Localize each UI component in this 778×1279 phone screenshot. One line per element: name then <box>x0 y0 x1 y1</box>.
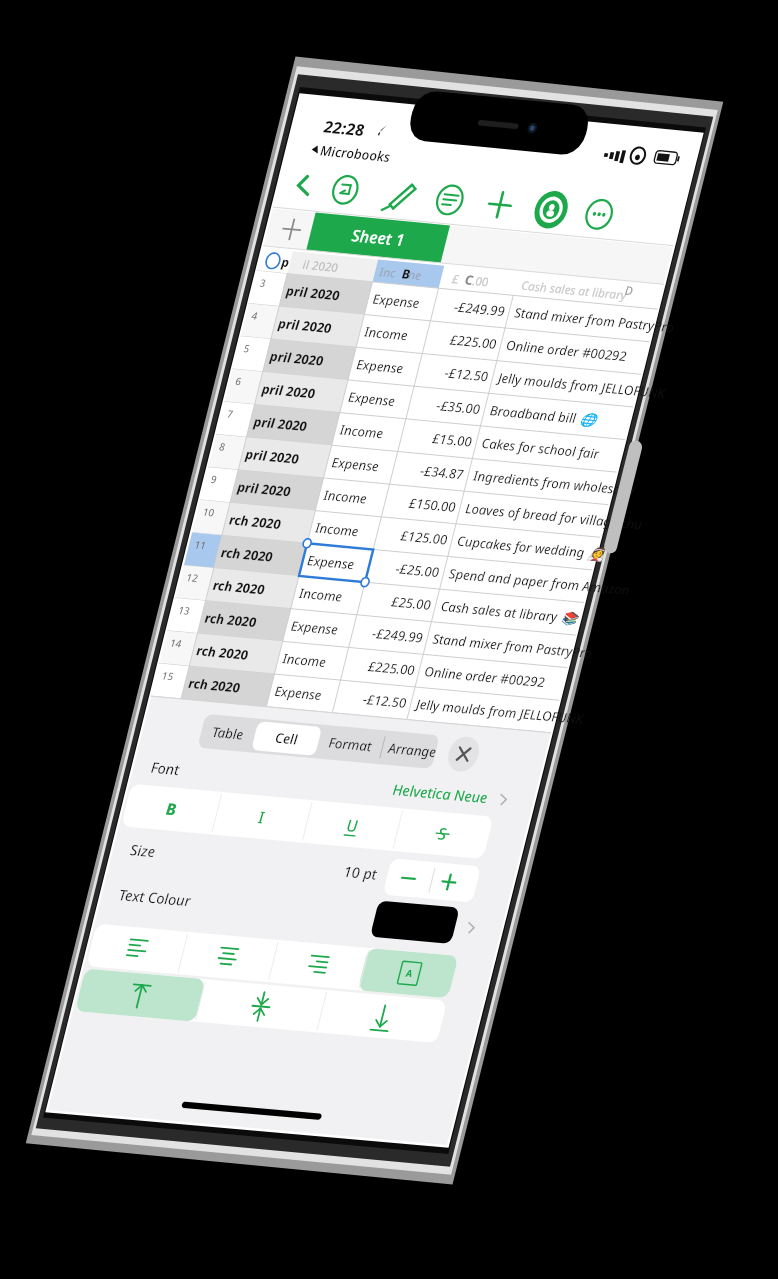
button[interactable]: Spreadsheet editor <box>0 0 778 1279</box>
